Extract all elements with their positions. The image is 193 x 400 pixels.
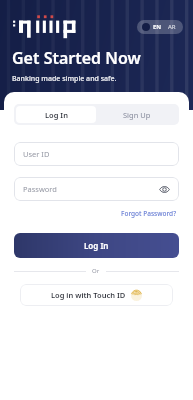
staticText: AR [168, 23, 176, 31]
staticText: Forgot Password? [121, 209, 177, 218]
staticText: Password [23, 184, 57, 194]
button[interactable]: Sign Up [96, 106, 177, 123]
staticText: Log In [45, 110, 68, 120]
staticText: Log In [84, 240, 109, 251]
button[interactable]: Show password [158, 183, 170, 195]
staticText: User ID [23, 149, 50, 159]
button[interactable]: Log In [14, 233, 179, 258]
button[interactable]: User ID [14, 142, 179, 166]
staticText: Sign Up [123, 110, 151, 120]
button[interactable]: EN [137, 20, 183, 34]
button[interactable]: Forgot Password? [119, 208, 179, 219]
button[interactable]: Log in with Touch ID [20, 284, 173, 306]
staticText: Or [92, 267, 100, 275]
staticText: Log in with Touch ID [51, 290, 126, 300]
staticText: EN [153, 23, 162, 31]
button[interactable]: Log In [16, 106, 96, 123]
staticText: Get Started Now [12, 47, 141, 69]
staticText: Banking made simple and safe. [12, 74, 117, 84]
button[interactable]: Password [14, 177, 179, 201]
